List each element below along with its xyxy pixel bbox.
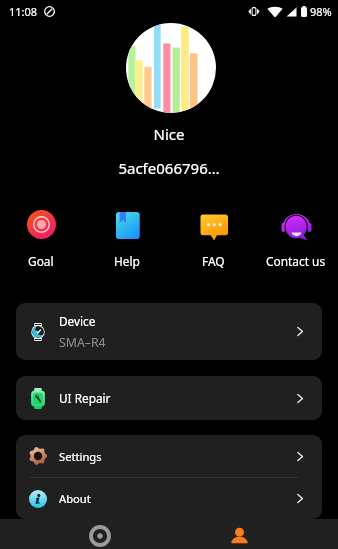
staticText: Nice [0,124,338,144]
button[interactable]: Help [84,209,170,269]
button[interactable]: Device [86,519,113,549]
staticText: 5acfe066796… [0,158,338,178]
staticText: FAQ [202,253,225,269]
staticText: Contact us [266,253,326,269]
staticText: 11:08 [9,4,38,19]
button[interactable]: FAQ [170,209,256,269]
button[interactable]: Settings [16,435,322,477]
staticText: Device [59,313,96,329]
staticText: Help [114,253,140,269]
staticText: Settings [59,449,102,464]
button[interactable]: UI Repair [16,376,322,420]
button[interactable]: About [16,478,322,519]
button[interactable]: Device [16,303,322,360]
staticText: 98% [310,4,332,19]
button[interactable]: Profile [226,519,253,549]
staticText: Goal [28,253,54,269]
staticText: SMA–R4 [59,334,106,351]
staticText: About [59,491,91,506]
button[interactable]: Goal [0,209,84,269]
staticText: UI Repair [59,390,111,406]
button[interactable]: Contact us [256,209,336,269]
